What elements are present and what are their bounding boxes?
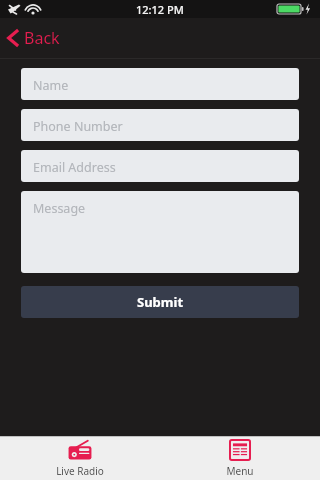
- button[interactable]: Email Address: [21, 150, 299, 182]
- button[interactable]: Live Radio: [0, 437, 160, 480]
- staticText: Email Address: [33, 159, 116, 176]
- staticText: Menu: [226, 464, 254, 478]
- staticText: Submit: [137, 293, 184, 311]
- button[interactable]: Message: [21, 191, 299, 273]
- staticText: 12:12 PM: [136, 2, 184, 17]
- button[interactable]: Back: [0, 23, 70, 53]
- staticText: Phone Number: [33, 118, 123, 135]
- button[interactable]: Name: [21, 68, 299, 100]
- staticText: Live Radio: [56, 464, 104, 478]
- staticText: Message: [33, 200, 86, 217]
- button[interactable]: Submit: [21, 286, 299, 318]
- button[interactable]: Menu: [160, 437, 320, 480]
- button[interactable]: Phone Number: [21, 109, 299, 141]
- staticText: Back: [24, 27, 60, 49]
- staticText: Name: [33, 77, 69, 94]
